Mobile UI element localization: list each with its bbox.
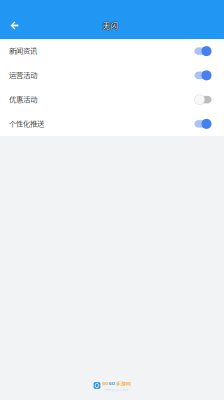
staticText: 新闻资讯 bbox=[9, 45, 37, 56]
staticText: 无闪 bbox=[102, 19, 118, 31]
staticText: 运营活动 bbox=[9, 70, 37, 80]
button[interactable]: Back bbox=[2, 13, 26, 37]
staticText: GO bbox=[109, 381, 115, 386]
staticText: www.gogo3.com bbox=[105, 388, 128, 391]
button[interactable]: 个性化推送 bbox=[0, 112, 224, 136]
staticText: 无闪 bbox=[102, 19, 118, 31]
staticText: 手游网 bbox=[115, 380, 130, 387]
staticText: 个性化推送 bbox=[9, 118, 44, 129]
staticText: 无闪 bbox=[102, 20, 118, 31]
staticText: 无闪 bbox=[102, 19, 118, 30]
button[interactable]: 新闻资讯 bbox=[0, 39, 224, 63]
button[interactable]: 优惠活动 bbox=[0, 87, 224, 112]
staticText: 无闪 bbox=[103, 19, 119, 31]
button[interactable]: 运营活动 bbox=[0, 63, 224, 87]
staticText: 优惠活动 bbox=[9, 94, 37, 104]
staticText: GO bbox=[102, 381, 108, 386]
